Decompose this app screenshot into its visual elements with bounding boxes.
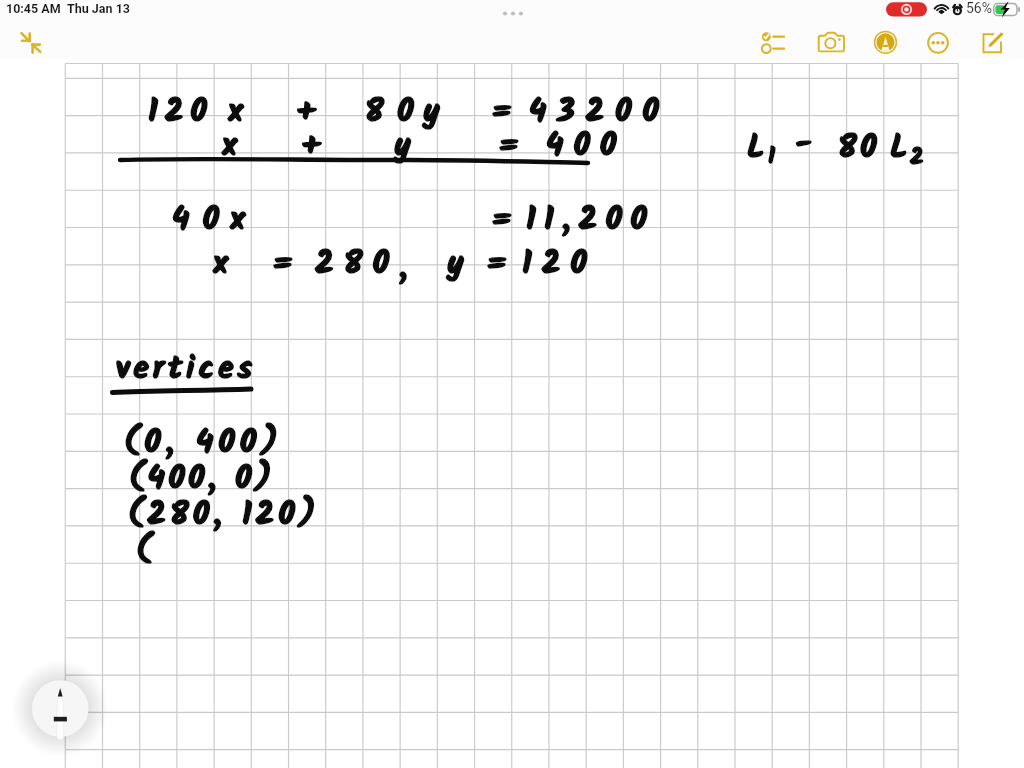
staticText: x bbox=[222, 121, 242, 172]
staticText: 120 bbox=[522, 239, 597, 290]
staticText: 56% bbox=[966, 0, 992, 16]
staticText: 10:45 AM bbox=[6, 1, 61, 16]
staticText: 11,200 bbox=[526, 195, 656, 246]
staticText: , bbox=[399, 243, 412, 294]
staticText: 11,200 bbox=[526, 195, 656, 246]
staticText: 400 bbox=[546, 121, 627, 172]
staticText: y bbox=[394, 121, 415, 172]
staticText: 2 bbox=[910, 140, 928, 177]
staticText: vertices bbox=[116, 344, 257, 395]
staticText: = bbox=[486, 239, 512, 290]
button[interactable]: More bbox=[919, 23, 959, 63]
staticText: 120 bbox=[522, 239, 597, 290]
staticText: = bbox=[491, 195, 517, 246]
staticText: (280, 120) bbox=[128, 490, 320, 541]
staticText: ( bbox=[136, 526, 156, 577]
staticText: = bbox=[498, 121, 524, 172]
staticText: 0 bbox=[860, 123, 881, 174]
staticText: 43200 bbox=[529, 87, 670, 138]
staticText: x bbox=[213, 239, 233, 290]
staticText: 0 bbox=[860, 123, 881, 174]
staticText: L bbox=[747, 123, 769, 174]
staticText: 8 bbox=[838, 123, 861, 174]
staticText: 400 bbox=[546, 121, 627, 172]
staticText: 2 bbox=[910, 140, 928, 177]
staticText: (280, 120) bbox=[128, 490, 320, 541]
staticText: x bbox=[213, 239, 233, 290]
staticText: 40 bbox=[172, 195, 232, 246]
staticText: y bbox=[394, 121, 415, 172]
staticText: (0, 400) bbox=[124, 418, 283, 469]
staticText: vertices bbox=[116, 344, 257, 395]
staticText: = bbox=[486, 239, 512, 290]
staticText: 280 bbox=[315, 239, 399, 290]
staticText: - bbox=[795, 119, 816, 170]
staticText: x bbox=[222, 121, 242, 172]
staticText: x bbox=[228, 87, 248, 138]
button[interactable]: Markup bbox=[866, 22, 906, 62]
staticText: y bbox=[447, 239, 468, 290]
staticText: + bbox=[296, 87, 320, 138]
staticText: y bbox=[447, 239, 468, 290]
staticText: L bbox=[890, 123, 912, 174]
staticText: = bbox=[491, 195, 517, 246]
staticText: ( bbox=[136, 526, 156, 577]
staticText: Thu Jan 13 bbox=[67, 1, 130, 16]
staticText: 120 bbox=[148, 87, 214, 138]
staticText: 80 bbox=[365, 87, 427, 138]
staticText: , bbox=[399, 243, 412, 294]
staticText: + bbox=[301, 121, 325, 172]
staticText: L bbox=[890, 123, 912, 174]
staticText: = bbox=[272, 239, 298, 290]
staticText: x bbox=[228, 87, 248, 138]
staticText: x bbox=[230, 195, 250, 246]
staticText: 1 bbox=[768, 139, 779, 176]
staticText: x bbox=[230, 195, 250, 246]
button[interactable]: Pen tool bbox=[30, 678, 98, 746]
staticText: 80 bbox=[365, 87, 427, 138]
staticText: y bbox=[423, 87, 444, 138]
button[interactable]: Camera bbox=[810, 24, 850, 64]
staticText: 120 bbox=[148, 87, 214, 138]
staticText: 1 bbox=[768, 139, 779, 176]
staticText: 8 bbox=[838, 123, 861, 174]
staticText: = bbox=[491, 87, 517, 138]
staticText: = bbox=[272, 239, 298, 290]
staticText: = bbox=[498, 121, 524, 172]
staticText: - bbox=[795, 119, 816, 170]
button[interactable]: Compose bbox=[972, 23, 1012, 63]
staticText: 43200 bbox=[529, 87, 670, 138]
staticText: = bbox=[491, 87, 517, 138]
button[interactable]: Checklist bbox=[748, 24, 788, 64]
staticText: y bbox=[423, 87, 444, 138]
button[interactable]: Collapse bbox=[16, 27, 48, 59]
staticText: (400, 0) bbox=[129, 454, 276, 505]
staticText: L bbox=[747, 123, 769, 174]
staticText: 40 bbox=[172, 195, 232, 246]
staticText: + bbox=[296, 87, 320, 138]
staticText: + bbox=[301, 121, 325, 172]
staticText: (0, 400) bbox=[124, 418, 283, 469]
staticText: (400, 0) bbox=[129, 454, 276, 505]
staticText: 280 bbox=[315, 239, 399, 290]
